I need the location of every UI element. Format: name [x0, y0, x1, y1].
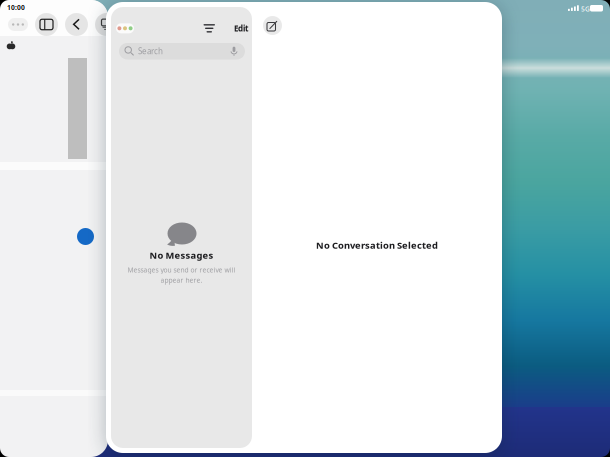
staticText: Messages you send or receive will	[127, 265, 235, 274]
button[interactable]: Display	[95, 13, 118, 36]
button[interactable]: New Message	[263, 16, 282, 35]
staticText: No Messages	[149, 249, 213, 261]
staticText: appear here.	[160, 276, 202, 285]
staticText: 10:00	[7, 3, 25, 12]
button[interactable]: Filter	[200, 20, 218, 36]
button[interactable]: Edit	[232, 20, 250, 37]
button[interactable]: Sidebar	[35, 13, 58, 36]
staticText: 5G	[581, 4, 590, 13]
staticText: No Conversation Selected	[316, 239, 438, 251]
staticText: Edit	[234, 23, 248, 34]
button[interactable]: Back	[65, 13, 88, 36]
staticText: Search	[138, 46, 163, 56]
